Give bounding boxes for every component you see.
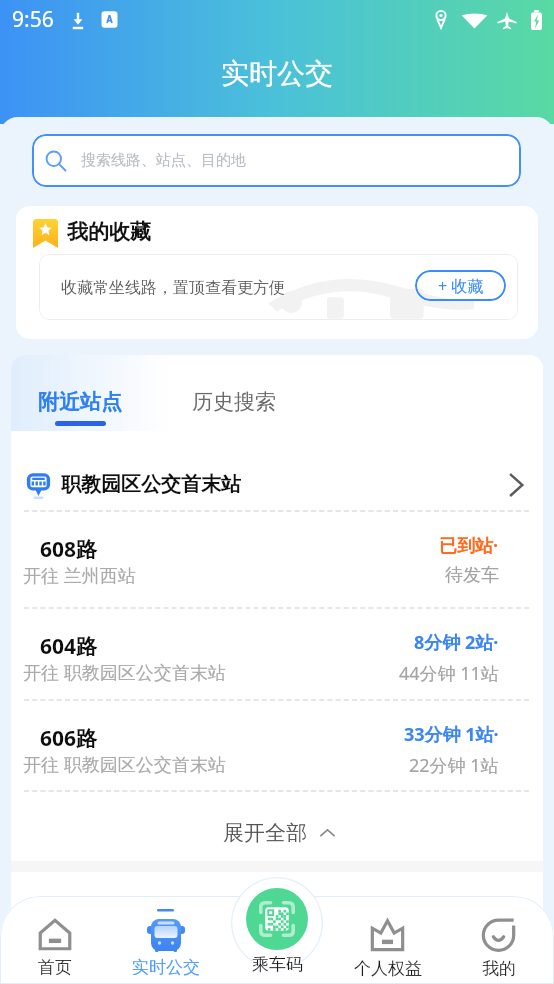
- other: 更多: [510, 474, 523, 496]
- staticText: 职教园区公交首末站: [61, 472, 241, 497]
- staticText: 搜索线路、站点、目的地: [81, 151, 246, 170]
- staticText: 实时公交: [221, 56, 333, 91]
- staticText: 开往 职教园区公交首末站: [23, 752, 226, 777]
- button[interactable]: 604路: [11, 607, 543, 699]
- button[interactable]: 实时公交: [110, 896, 221, 984]
- button[interactable]: 个人权益: [332, 896, 443, 984]
- staticText: 33分钟 1站·: [404, 722, 499, 747]
- staticText: 收藏常坐线路，置顶查看更方便: [61, 278, 285, 298]
- button[interactable]: 我的: [443, 896, 554, 984]
- staticText: 开往 兰州西站: [23, 563, 136, 588]
- staticText: 实时公交: [132, 957, 200, 978]
- staticText: 608路: [40, 535, 98, 564]
- staticText: + 收藏: [438, 275, 484, 297]
- staticText: 展开全部: [223, 820, 307, 846]
- staticText: 44分钟 11站: [399, 661, 499, 686]
- button[interactable]: 职教园区公交首末站: [11, 459, 543, 510]
- button[interactable]: 展开全部: [11, 790, 543, 861]
- staticText: 乘车码: [252, 954, 303, 975]
- button[interactable]: + 收藏: [415, 270, 506, 301]
- button[interactable]: 附近站点: [29, 381, 131, 431]
- button[interactable]: 搜索线路、站点、目的地: [32, 134, 521, 187]
- staticText: 开往 职教园区公交首末站: [23, 660, 226, 685]
- staticText: 我的: [482, 958, 516, 979]
- button[interactable]: 606路: [11, 699, 543, 790]
- button[interactable]: 乘车码: [246, 888, 308, 950]
- staticText: 8分钟 2站·: [414, 630, 499, 655]
- button[interactable]: 608路: [11, 510, 543, 607]
- button[interactable]: 首页: [0, 896, 110, 984]
- staticText: 我的收藏: [67, 219, 151, 245]
- staticText: 604路: [40, 632, 98, 661]
- staticText: 历史搜索: [192, 389, 276, 415]
- button[interactable]: 历史搜索: [183, 381, 285, 431]
- staticText: 个人权益: [354, 958, 422, 979]
- staticText: 22分钟 1站: [409, 753, 499, 778]
- staticText: 首页: [38, 957, 72, 978]
- staticText: 附近站点: [38, 389, 122, 415]
- staticText: 已到站·: [439, 533, 499, 558]
- staticText: 9:56: [12, 5, 54, 34]
- staticText: 待发车: [445, 564, 499, 587]
- staticText: 606路: [40, 724, 98, 753]
